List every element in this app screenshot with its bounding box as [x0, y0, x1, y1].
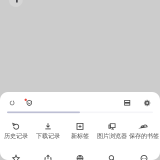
button[interactable]: 历史记录 [0, 117, 32, 147]
staticText: 图片浏览器 [97, 132, 127, 140]
button[interactable]: 保存的书签 [128, 117, 160, 147]
staticText: 下载记录 [36, 132, 60, 140]
button[interactable]: Site privacy and security [23, 96, 36, 109]
button[interactable]: Reload page [6, 96, 19, 109]
button[interactable]: 页面查找 [96, 149, 128, 160]
staticText: 历史记录 [4, 132, 28, 140]
button[interactable]: 分享页面 [32, 149, 64, 160]
button[interactable]: 下载记录 [32, 117, 64, 147]
button[interactable]: 更多工具 [128, 149, 160, 160]
button[interactable]: 添加书签 [0, 149, 32, 160]
button[interactable]: Tabs [121, 96, 134, 109]
button[interactable]: 图片浏览器 [96, 117, 128, 147]
button[interactable]: 翻译页面 [64, 149, 96, 160]
staticText: 保存的书签 [129, 132, 159, 140]
button[interactable]: Settings [141, 96, 154, 109]
button[interactable]: 新标签 [64, 117, 96, 147]
staticText: 新标签 [71, 132, 89, 140]
